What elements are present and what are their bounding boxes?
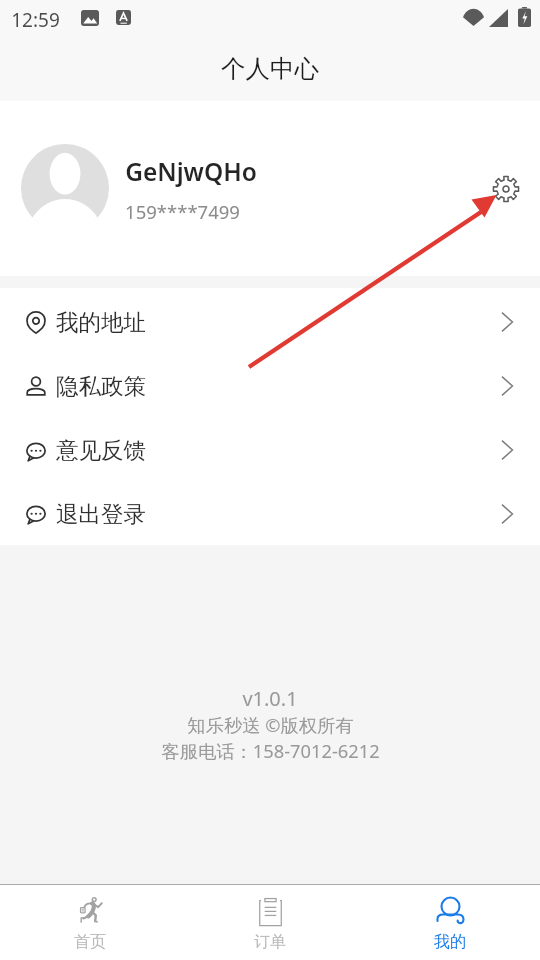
- staticText: 知乐秒送 ©版权所有: [187, 712, 354, 737]
- staticText: 意见反馈: [56, 436, 146, 464]
- button[interactable]: 意见反馈: [0, 418, 540, 482]
- staticText: 我的地址: [56, 308, 146, 336]
- staticText: v1.0.1: [242, 685, 298, 712]
- button[interactable]: 首页: [0, 884, 180, 960]
- staticText: 客服电话：158-7012-6212: [161, 738, 380, 763]
- button[interactable]: 隐私政策: [0, 354, 540, 418]
- staticText: 12:59: [11, 7, 60, 33]
- button[interactable]: 订单: [180, 884, 360, 960]
- staticText: 我的: [434, 932, 466, 952]
- staticText: 订单: [254, 932, 286, 952]
- staticText: GeNjwQHo: [125, 155, 257, 188]
- staticText: 159****7499: [125, 199, 240, 224]
- button[interactable]: Settings: [486, 169, 526, 209]
- button[interactable]: GeNjwQHo: [0, 134, 540, 242]
- button[interactable]: 退出登录: [0, 482, 540, 545]
- staticText: 个人中心: [221, 53, 319, 84]
- button[interactable]: 我的: [360, 884, 540, 960]
- button[interactable]: 我的地址: [0, 290, 540, 354]
- staticText: 退出登录: [56, 500, 146, 528]
- staticText: 隐私政策: [56, 372, 146, 400]
- staticText: 首页: [74, 932, 106, 952]
